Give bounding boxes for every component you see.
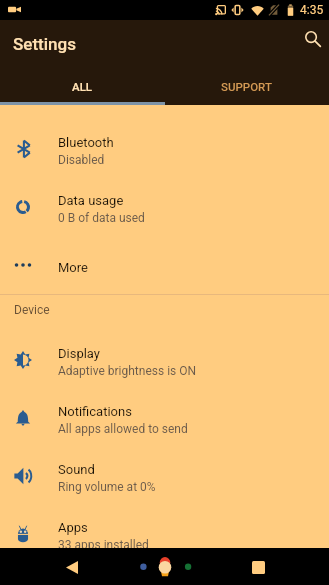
staticText: 0 B of data used	[58, 211, 145, 225]
staticText: Notifications	[58, 404, 132, 419]
staticText: Display	[58, 346, 100, 361]
staticText: Apps	[58, 520, 88, 535]
staticText: ALL	[72, 80, 93, 93]
button[interactable]: SUPPORT	[164, 68, 329, 105]
button[interactable]: ALL	[0, 68, 164, 105]
button[interactable]: Back	[58, 553, 86, 581]
staticText: Bluetooth	[58, 135, 114, 150]
staticText: Sound	[58, 462, 95, 477]
staticText: More	[58, 260, 88, 275]
button[interactable]: Search	[302, 28, 324, 50]
staticText: All apps allowed to send	[58, 422, 188, 436]
staticText: Disabled	[58, 153, 105, 167]
staticText: Data usage	[58, 193, 124, 208]
button[interactable]: Sound	[0, 447, 329, 505]
button[interactable]: Home	[148, 550, 182, 584]
staticText: Adaptive brightness is ON	[58, 364, 197, 378]
button[interactable]: More	[0, 236, 329, 294]
button[interactable]: Notifications	[0, 389, 329, 447]
staticText: 33 apps installed	[58, 538, 149, 548]
staticText: Settings	[13, 34, 76, 54]
button[interactable]: Apps	[0, 505, 329, 548]
button[interactable]: Display	[0, 331, 329, 389]
staticText: 4:35	[300, 3, 324, 17]
staticText: Ring volume at 0%	[58, 480, 156, 494]
button[interactable]: Data usage	[0, 178, 329, 236]
button[interactable]: Bluetooth	[0, 120, 329, 178]
button[interactable]: Recents	[244, 553, 272, 581]
staticText: SUPPORT	[221, 80, 272, 93]
staticText: Device	[14, 303, 50, 317]
